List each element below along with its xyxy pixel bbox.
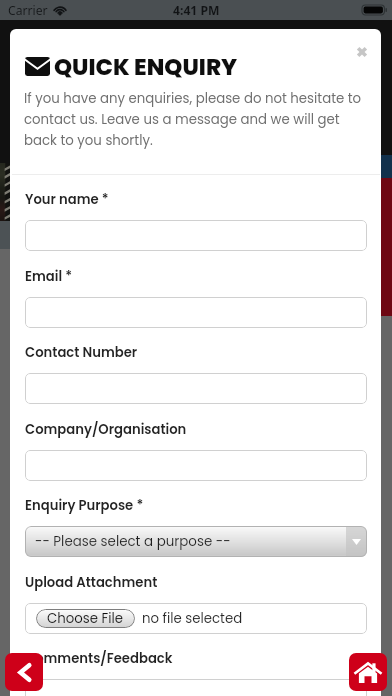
staticText: Carrier — [8, 2, 48, 19]
staticText: Choose File — [47, 609, 124, 628]
staticText: no file selected — [142, 609, 243, 628]
staticText: Comments/Feedback — [25, 649, 173, 667]
button[interactable] — [25, 220, 367, 251]
button[interactable]: Close — [347, 37, 376, 66]
staticText: Upload Attachment — [25, 573, 158, 591]
staticText: Email * — [25, 267, 73, 285]
staticText: Enquiry Purpose * — [25, 496, 144, 514]
staticText: 4:41 PM — [173, 2, 220, 19]
button[interactable] — [25, 297, 367, 328]
button[interactable]: Home — [349, 653, 387, 691]
button[interactable] — [25, 373, 367, 404]
button[interactable] — [25, 450, 367, 481]
staticText: If you have any enquiries, please do not… — [24, 89, 364, 150]
staticText: Your name * — [25, 190, 109, 208]
button[interactable]: Choose File — [25, 603, 367, 634]
button[interactable]: Back — [5, 653, 43, 691]
staticText: Contact Number — [25, 343, 138, 361]
button[interactable]: -- Please select a purpose -- — [25, 526, 367, 557]
staticText: QUICK ENQUIRY — [54, 51, 238, 83]
staticText: Company/Organisation — [25, 420, 187, 438]
button[interactable] — [25, 679, 367, 696]
staticText: -- Please select a purpose -- — [35, 532, 231, 551]
